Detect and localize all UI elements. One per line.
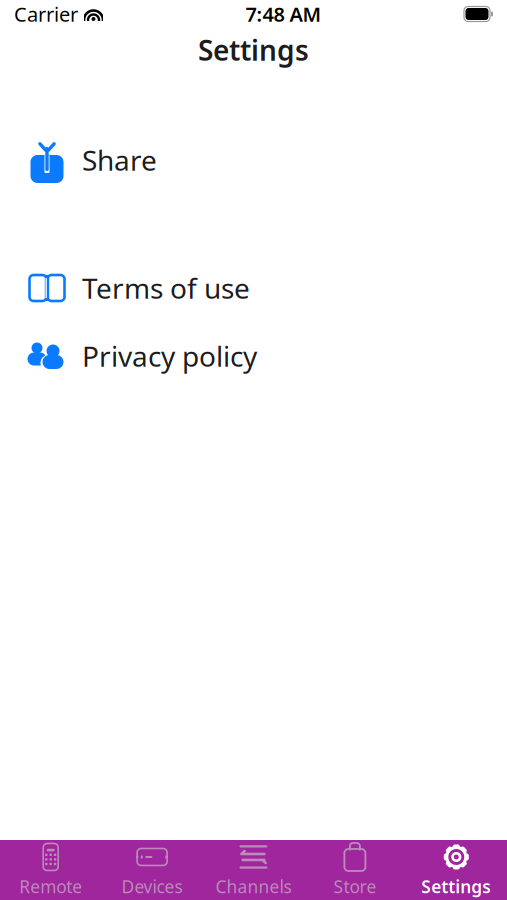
button[interactable]: Share [0,134,507,186]
staticText: Share [82,141,157,179]
staticText: Remote [19,875,82,898]
staticText: Carrier [14,1,78,27]
staticText: 7:48 AM [245,1,321,27]
button[interactable]: Settings [406,841,507,899]
button[interactable]: Terms of use [0,262,507,314]
staticText: Store [333,875,376,898]
staticText: Terms of use [82,269,250,307]
staticText: Settings [421,875,491,898]
staticText: Settings [198,31,309,69]
staticText: Devices [122,875,183,898]
staticText: Privacy policy [82,337,257,375]
button[interactable]: Devices [101,841,203,899]
staticText: Channels [215,875,291,898]
button[interactable]: Store [304,841,406,899]
button[interactable]: Remote [0,841,101,899]
button[interactable]: Privacy policy [0,330,507,382]
button[interactable]: Channels [203,841,304,899]
